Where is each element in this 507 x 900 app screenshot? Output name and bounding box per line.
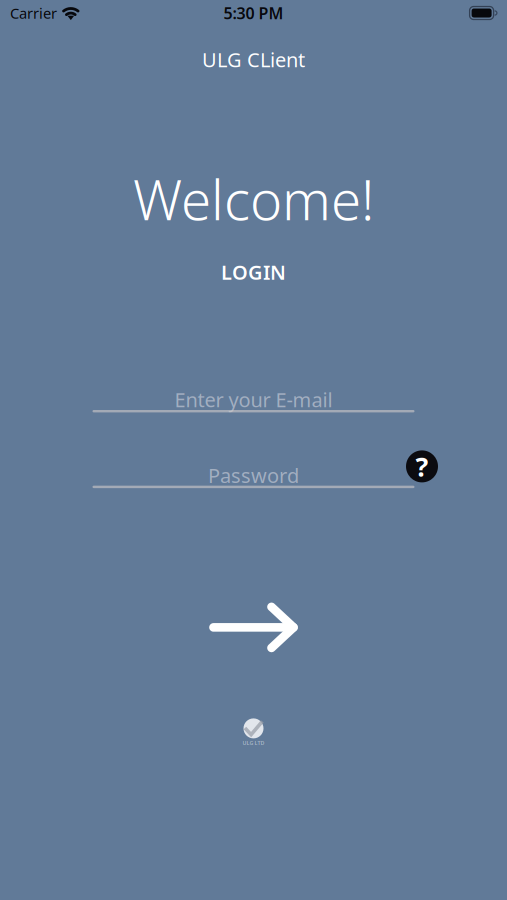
staticText: ULG CLient (202, 46, 305, 73)
staticText: Enter your E-mail (174, 386, 332, 413)
button[interactable]: Password (92, 465, 414, 488)
staticText: Welcome! (133, 163, 374, 235)
button[interactable]: Help (406, 450, 438, 482)
staticText: Password (208, 462, 299, 488)
staticText: LOGIN (221, 259, 286, 285)
staticText: ULG LTD (242, 739, 264, 746)
staticText: Carrier (10, 3, 57, 23)
staticText: ? (415, 449, 428, 484)
button[interactable]: Enter your E-mail (92, 389, 414, 412)
button[interactable]: Continue (208, 600, 298, 654)
staticText: 5:30 PM (223, 2, 283, 24)
